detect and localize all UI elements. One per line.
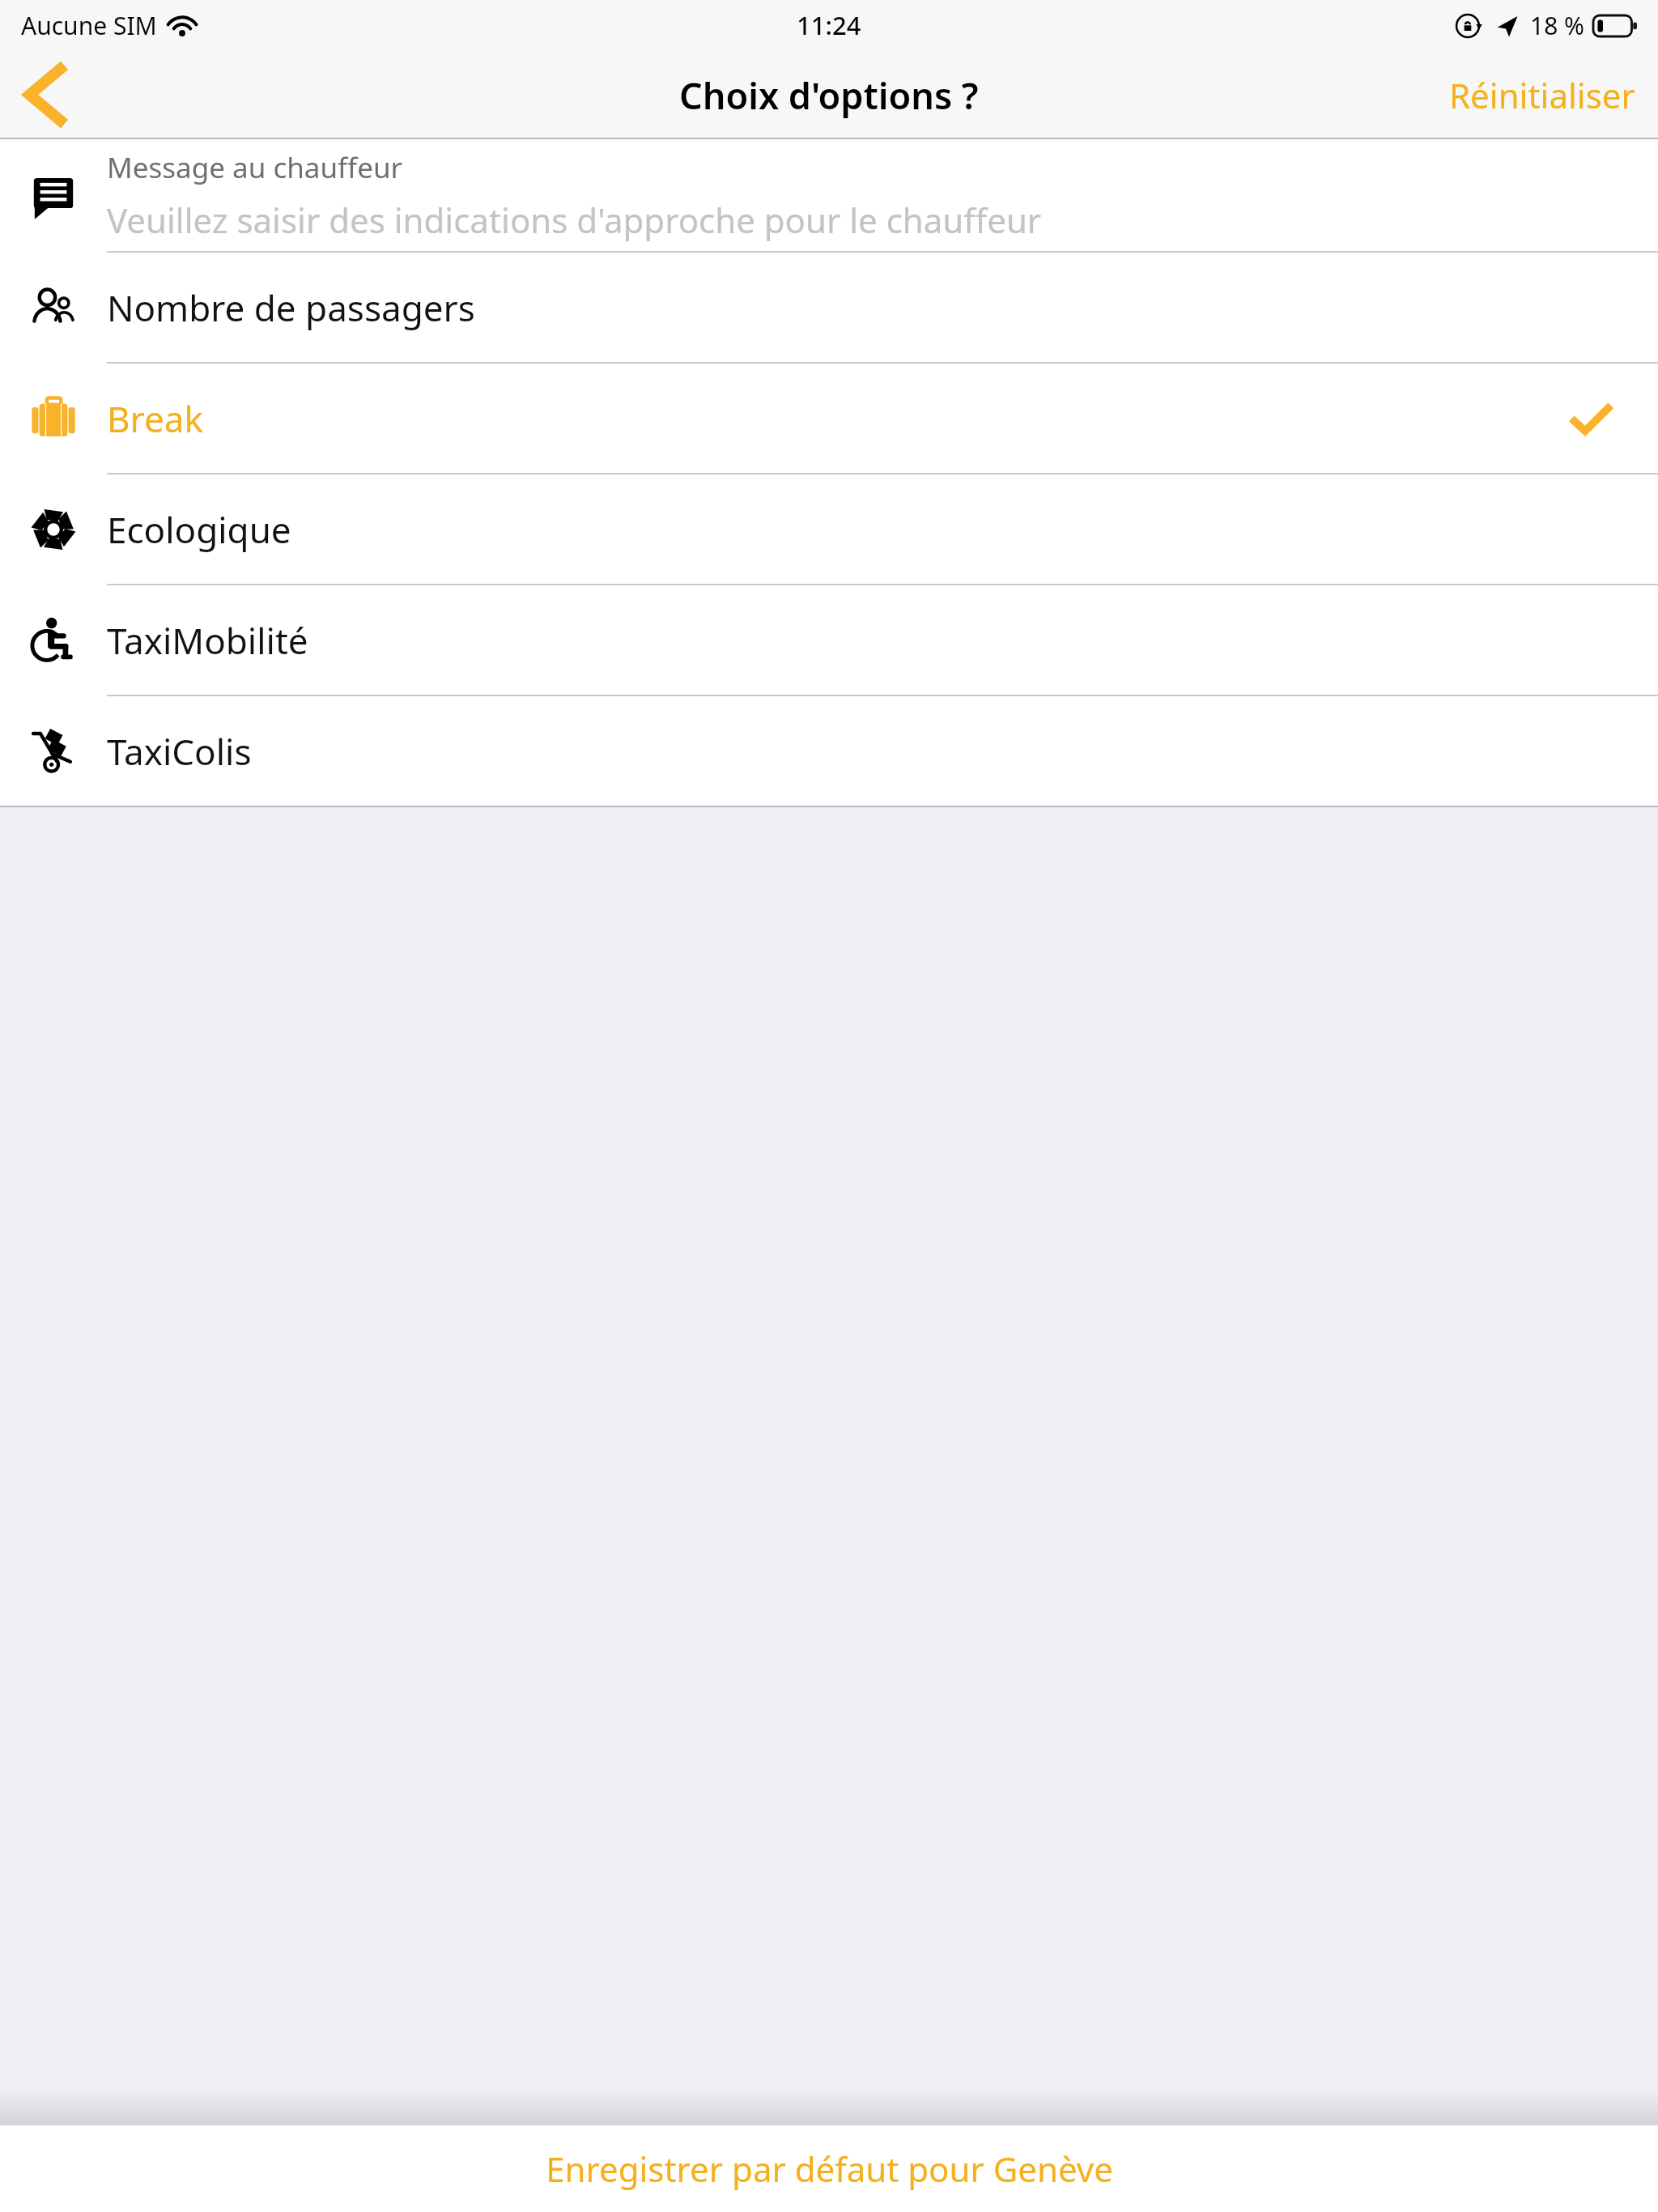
staticText: TaxiColis xyxy=(107,727,252,776)
staticText: Aucune SIM xyxy=(21,9,157,42)
button[interactable]: Réinitialiser xyxy=(1426,57,1658,133)
staticText: 11:24 xyxy=(797,8,861,42)
staticText: Break xyxy=(107,394,203,443)
staticText: Enregistrer par défaut pour Genève xyxy=(546,2146,1113,2192)
button[interactable]: Retour xyxy=(0,50,89,139)
button[interactable]: Ecologique xyxy=(0,474,1658,584)
staticText: TaxiMobilité xyxy=(107,616,308,665)
button[interactable]: TaxiColis xyxy=(0,696,1658,806)
staticText: Nombre de passagers xyxy=(107,283,475,332)
button[interactable]: Nombre de passagers xyxy=(0,253,1658,362)
button[interactable]: Enregistrer par défaut pour Genève xyxy=(0,2125,1658,2212)
button[interactable]: TaxiMobilité xyxy=(0,585,1658,695)
button[interactable]: Message au chauffeur xyxy=(0,139,1658,251)
staticText: 18 % xyxy=(1530,9,1585,42)
staticText: Veuillez saisir des indications d'approc… xyxy=(107,197,1042,243)
staticText: Choix d'options ? xyxy=(679,70,979,120)
staticText: Réinitialiser xyxy=(1449,72,1635,118)
staticText: Message au chauffeur xyxy=(107,148,402,187)
staticText: Ecologique xyxy=(107,505,291,554)
button[interactable]: Break xyxy=(0,364,1658,473)
